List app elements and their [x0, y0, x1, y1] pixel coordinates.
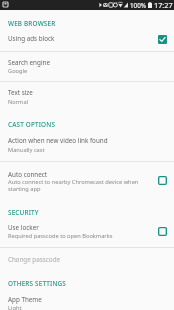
staticText: Normal — [8, 98, 29, 106]
staticText: Required passcode to open Bookmarks — [8, 232, 113, 240]
staticText: 100% — [130, 1, 147, 10]
staticText: 17:27 — [154, 0, 173, 10]
staticText: Using ads block — [8, 34, 55, 43]
staticText: Manually cast — [8, 146, 45, 154]
button[interactable]: Unchecked — [158, 227, 167, 236]
button[interactable] — [0, 216, 174, 247]
staticText: OTHERS SETTINGS — [8, 279, 66, 288]
staticText: WEB BROWSER — [8, 19, 56, 28]
button[interactable]: Unchecked — [158, 176, 167, 185]
staticText: Search engine — [8, 58, 50, 67]
staticText: App Theme — [8, 295, 42, 304]
button[interactable] — [0, 14, 174, 51]
staticText: CAST OPTIONS — [8, 120, 56, 129]
button[interactable] — [0, 51, 174, 81]
staticText: SECURITY — [8, 208, 39, 217]
button[interactable] — [0, 161, 174, 197]
button[interactable]: Checked — [158, 35, 167, 44]
button[interactable] — [0, 81, 174, 112]
button[interactable] — [0, 288, 174, 310]
staticText: Text size — [8, 88, 33, 97]
staticText: Change passcode — [8, 255, 61, 264]
staticText: starting app — [8, 185, 41, 193]
staticText: Light — [8, 304, 22, 310]
staticText: Action when new video link found — [8, 136, 108, 145]
staticText: Google — [8, 67, 28, 75]
staticText: Auto connect — [8, 170, 48, 179]
staticText: Auto connect to nearby Chromecast device… — [8, 178, 139, 186]
staticText: Use locker — [8, 223, 39, 232]
button[interactable] — [0, 247, 174, 270]
button[interactable] — [0, 130, 174, 161]
